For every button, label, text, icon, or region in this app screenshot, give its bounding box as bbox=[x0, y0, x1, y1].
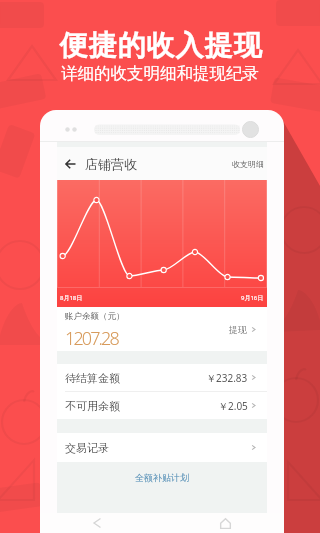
button[interactable]: 交易记录 bbox=[57, 433, 267, 462]
button[interactable]: Back bbox=[62, 154, 79, 174]
staticText: 8月18日 bbox=[60, 294, 83, 302]
button[interactable]: 提现 bbox=[229, 324, 257, 335]
staticText: 交易记录 bbox=[65, 441, 109, 455]
staticText: 提现 bbox=[229, 324, 247, 335]
button[interactable]: Home bbox=[162, 513, 284, 533]
staticText: ￥2.05 bbox=[218, 399, 248, 413]
staticText: 详细的收支明细和提现纪录 bbox=[61, 63, 259, 84]
staticText: 待结算金额 bbox=[65, 371, 120, 385]
button[interactable]: 收支明细 bbox=[232, 159, 264, 169]
staticText: 9月16日 bbox=[241, 294, 264, 302]
button[interactable]: 待结算金额 bbox=[57, 364, 267, 391]
staticText: 不可用余额 bbox=[65, 399, 120, 413]
staticText: 便捷的收入提现 bbox=[59, 28, 262, 63]
staticText: 账户余额（元） bbox=[65, 311, 125, 322]
staticText: 全额补贴计划 bbox=[135, 472, 189, 483]
button[interactable]: 不可用余额 bbox=[57, 392, 267, 419]
staticText: 1207.28 bbox=[65, 326, 118, 351]
button[interactable]: Back bbox=[40, 513, 162, 533]
staticText: 店铺营收 bbox=[85, 156, 137, 172]
staticText: ￥232.83 bbox=[206, 371, 248, 385]
button[interactable]: 全额补贴计划 bbox=[57, 472, 267, 483]
